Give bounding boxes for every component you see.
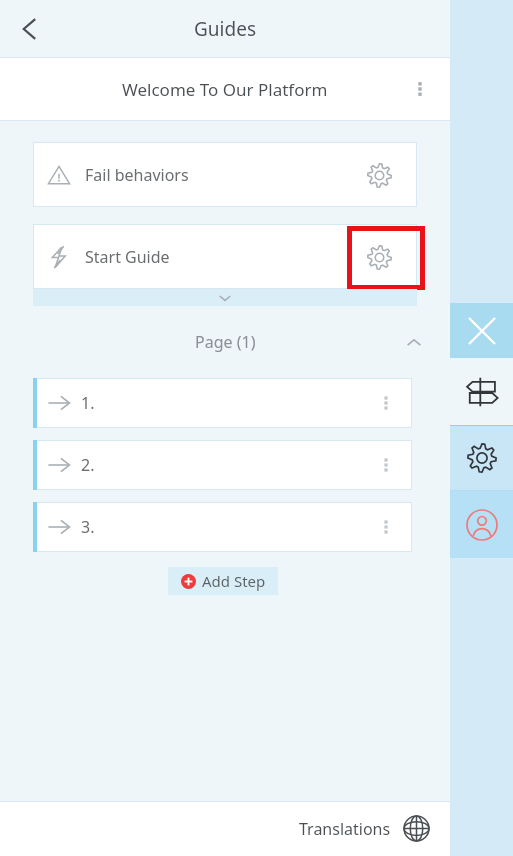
button[interactable]: Start Guide [33, 224, 417, 289]
button[interactable]: More options [402, 71, 438, 107]
button[interactable]: Profile [450, 491, 513, 558]
button[interactable]: Step options [366, 383, 406, 423]
staticText: 2. [81, 454, 95, 476]
staticText: Add Step [202, 571, 266, 591]
button[interactable]: 2. [33, 440, 412, 490]
staticText: Translations [299, 818, 391, 840]
button[interactable]: Back [6, 5, 54, 53]
staticText: Guides [194, 16, 256, 42]
staticText: Page (1) [195, 331, 256, 353]
button[interactable]: Guides [450, 358, 513, 425]
button[interactable]: Settings [450, 426, 513, 490]
button[interactable]: Collapse [33, 289, 417, 306]
staticText: 3. [81, 516, 95, 538]
button[interactable]: Page (1) [0, 325, 450, 359]
button[interactable]: Add Step [168, 567, 278, 595]
button[interactable]: 3. [33, 502, 412, 552]
button[interactable]: Step options [366, 445, 406, 485]
staticText: Welcome To Our Platform [122, 78, 328, 101]
button[interactable]: Settings [353, 149, 405, 201]
button[interactable]: Fail behaviors [33, 142, 417, 207]
staticText: 1. [81, 392, 95, 414]
button[interactable]: Close [450, 303, 513, 358]
button[interactable]: Step options [366, 507, 406, 547]
button[interactable]: Translations [291, 809, 438, 848]
button[interactable]: Settings [353, 231, 405, 283]
staticText: Start Guide [85, 246, 170, 268]
staticText: Fail behaviors [85, 164, 189, 186]
button[interactable]: 1. [33, 378, 412, 428]
